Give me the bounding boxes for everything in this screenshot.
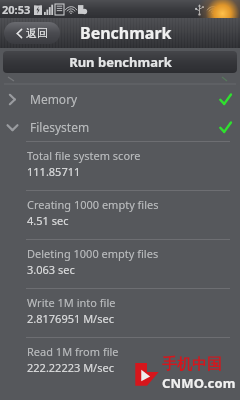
button[interactable]: Write 1M into file <box>0 295 240 337</box>
button[interactable]: Run benchmark <box>3 51 237 73</box>
staticText: Total file system score <box>27 148 141 163</box>
button[interactable]: Creating 1000 empty files <box>0 197 240 239</box>
button[interactable]: Deleting 1000 empty files <box>0 246 240 288</box>
staticText: Write 1M into file <box>27 295 116 310</box>
staticText: 手机中国 <box>162 355 222 374</box>
staticText: 3.063 sec <box>27 262 75 277</box>
button[interactable]: 返回 <box>4 22 60 44</box>
button[interactable]: Memory <box>0 85 240 113</box>
button[interactable]: Read 1M from file <box>0 344 240 386</box>
staticText: 20:53 <box>2 2 31 17</box>
staticText: CNMO.com <box>162 374 236 392</box>
staticText: 4.51 sec <box>27 213 69 228</box>
staticText: Filesystem <box>30 119 90 135</box>
staticText: Read 1M from file <box>27 344 119 359</box>
staticText: 111.85711 <box>27 164 81 179</box>
button[interactable]: Filesystem <box>0 113 240 141</box>
staticText: Creating 1000 empty files <box>27 197 159 212</box>
staticText: Deleting 1000 empty files <box>27 246 159 261</box>
staticText: 222.22223 M/sec <box>27 360 114 375</box>
staticText: Benchmark <box>80 22 172 44</box>
button[interactable]: Total file system score <box>0 148 240 190</box>
staticText: 返回 <box>26 26 48 40</box>
staticText: Run benchmark <box>69 53 172 71</box>
staticText: 2.8176951 M/sec <box>27 311 114 326</box>
staticText: Memory <box>30 91 78 107</box>
